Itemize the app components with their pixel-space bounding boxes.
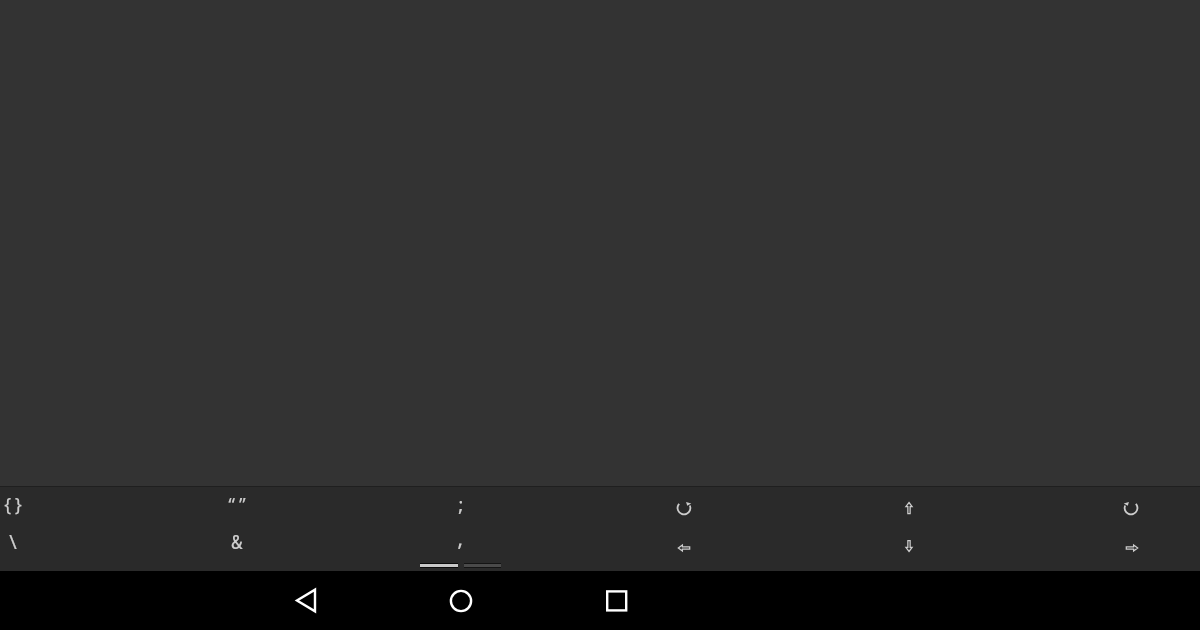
staticText: ;	[455, 492, 466, 517]
button[interactable]: Move left	[654, 530, 714, 566]
button[interactable]: Ampersand	[207, 523, 267, 559]
button[interactable]: Curly braces	[0, 486, 43, 522]
button[interactable]: Move up	[879, 490, 939, 526]
button[interactable]: Backslash	[0, 523, 43, 559]
button[interactable]: Move right	[1102, 530, 1162, 566]
button[interactable]: Double quotes	[207, 486, 267, 522]
button[interactable]: Back	[280, 571, 340, 630]
button[interactable]: Comma	[430, 521, 490, 557]
button[interactable]: Semicolon	[430, 486, 490, 522]
staticText: “”	[226, 492, 248, 517]
staticText: &	[231, 528, 243, 555]
button[interactable]: Home	[431, 571, 491, 630]
button[interactable]: Undo	[654, 490, 714, 526]
staticText: ,	[454, 526, 466, 552]
staticText: {}	[2, 492, 24, 517]
button[interactable]: Redo	[1101, 490, 1161, 526]
staticText: \	[7, 528, 19, 555]
button[interactable]: Recent apps	[587, 571, 647, 630]
button[interactable]: Move down	[879, 528, 939, 564]
